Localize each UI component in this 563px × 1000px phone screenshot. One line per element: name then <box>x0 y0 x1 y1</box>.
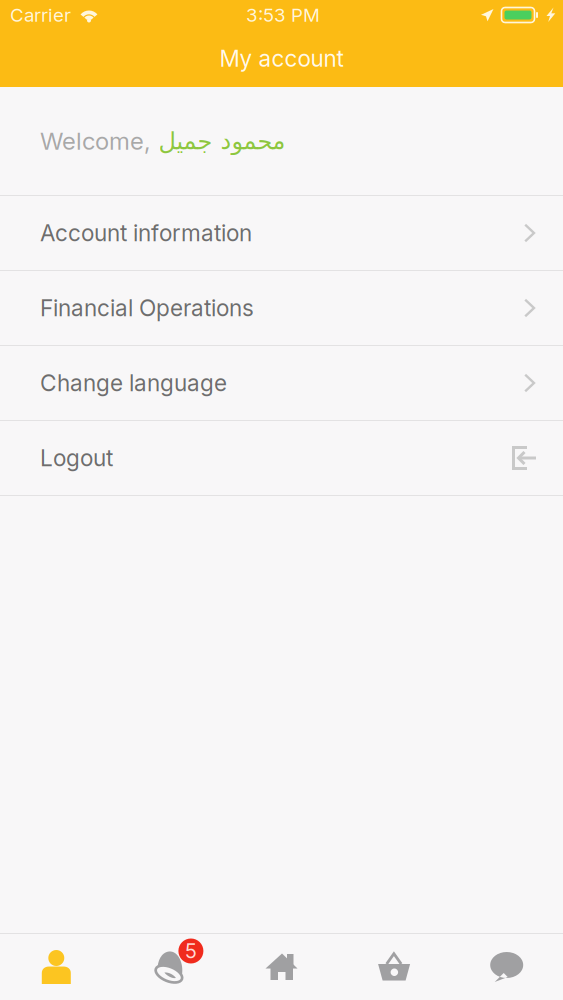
staticText: 5 <box>185 939 197 963</box>
staticText: 3:53 PM <box>246 4 320 26</box>
staticText: Account information <box>40 219 252 247</box>
button[interactable]: Change language <box>0 346 563 420</box>
staticText: Financial Operations <box>40 294 254 322</box>
button[interactable]: Home <box>225 934 338 1000</box>
button[interactable]: Messages <box>450 934 563 1000</box>
button[interactable]: Account information <box>0 196 563 270</box>
staticText: Logout <box>40 444 113 472</box>
staticText: Carrier <box>10 4 71 26</box>
button[interactable]: Cart <box>338 934 450 1000</box>
staticText: محمود جميل <box>158 127 285 155</box>
button[interactable]: Logout <box>0 421 563 495</box>
staticText: Change language <box>40 369 227 397</box>
button[interactable]: Notifications, 5 unread <box>113 934 225 1000</box>
button[interactable]: My account <box>0 934 113 1000</box>
button[interactable]: Financial Operations <box>0 271 563 345</box>
staticText: Welcome, <box>40 126 158 155</box>
staticText: My account <box>219 45 343 72</box>
